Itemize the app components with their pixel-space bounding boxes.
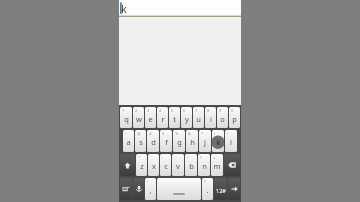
- staticText: (: [214, 131, 216, 136]
- button[interactable]: l: [225, 130, 237, 152]
- staticText: k: [121, 1, 127, 16]
- button[interactable]: t: [169, 107, 180, 128]
- button[interactable]: k: [119, 0, 241, 17]
- staticText: m: [213, 161, 221, 171]
- button[interactable]: b: [185, 154, 197, 176]
- button[interactable]: m: [211, 154, 223, 176]
- staticText: o: [220, 114, 225, 124]
- button[interactable]: Enter: [228, 178, 240, 200]
- button[interactable]: d: [147, 130, 159, 152]
- staticText: 3: [147, 108, 150, 113]
- staticText: 2: [135, 108, 138, 113]
- staticText: @: [137, 131, 141, 136]
- button[interactable]: ,: [145, 178, 156, 200]
- staticText: ": [138, 155, 140, 160]
- button[interactable]: u: [193, 107, 204, 128]
- staticText: p: [232, 114, 237, 124]
- staticText: ;: [174, 155, 176, 160]
- button[interactable]: g: [173, 130, 185, 152]
- staticText: !: [125, 131, 127, 136]
- button[interactable]: Backspace: [224, 154, 240, 176]
- staticText: /: [187, 155, 189, 160]
- staticText: l: [230, 137, 232, 147]
- staticText: ): [227, 131, 229, 136]
- button[interactable]: s: [135, 130, 146, 152]
- button[interactable]: .: [202, 178, 213, 200]
- staticText: b: [189, 161, 194, 171]
- staticText: $: [162, 131, 165, 136]
- staticText: s: [139, 137, 143, 147]
- staticText: v: [176, 161, 180, 171]
- button[interactable]: i: [205, 107, 216, 128]
- staticText: e: [148, 114, 153, 124]
- staticText: *: [201, 131, 204, 136]
- staticText: d: [151, 137, 156, 147]
- staticText: ,: [149, 185, 152, 195]
- button[interactable]: 12#: [214, 178, 227, 200]
- staticText: c: [164, 161, 168, 171]
- button[interactable]: z: [136, 154, 147, 176]
- button[interactable]: w: [133, 107, 144, 128]
- button[interactable]: v: [172, 154, 184, 176]
- button[interactable]: Switch keyboard: [120, 178, 132, 200]
- staticText: !: [147, 179, 149, 184]
- button[interactable]: a: [123, 130, 134, 152]
- staticText: &: [188, 131, 191, 136]
- staticText: h: [190, 137, 195, 147]
- staticText: 4: [159, 108, 162, 113]
- button[interactable]: Voice input: [133, 178, 144, 200]
- staticText: 7: [195, 108, 198, 113]
- staticText: k: [216, 137, 221, 147]
- staticText: g: [177, 137, 182, 147]
- button[interactable]: j: [199, 130, 211, 152]
- button[interactable]: c: [160, 154, 171, 176]
- button[interactable]: Shift: [120, 154, 135, 176]
- button[interactable]: r: [157, 107, 168, 128]
- staticText: j: [204, 137, 206, 147]
- button[interactable]: y: [181, 107, 192, 128]
- staticText: w: [136, 114, 142, 124]
- staticText: ': [150, 155, 151, 160]
- staticText: .: [206, 185, 209, 195]
- staticText: 12#: [216, 187, 226, 194]
- staticText: a: [126, 137, 131, 147]
- button[interactable]: h: [186, 130, 198, 152]
- staticText: ?: [204, 179, 206, 184]
- staticText: 8: [207, 108, 210, 113]
- staticText: 5: [171, 108, 174, 113]
- button[interactable]: n: [198, 154, 210, 176]
- staticText: :: [162, 155, 164, 160]
- staticText: z: [140, 161, 144, 171]
- staticText: %: [175, 131, 179, 136]
- staticText: 0: [231, 108, 234, 113]
- staticText: i: [210, 114, 212, 124]
- staticText: 1: [122, 108, 125, 113]
- staticText: ?: [200, 155, 202, 160]
- staticText: t: [173, 114, 176, 124]
- button[interactable]: e: [145, 107, 156, 128]
- button[interactable]: q: [120, 107, 132, 128]
- staticText: 9: [219, 108, 222, 113]
- staticText: n: [202, 161, 207, 171]
- staticText: 6: [183, 108, 186, 113]
- staticText: u: [196, 114, 201, 124]
- button[interactable]: f: [160, 130, 172, 152]
- staticText: y: [185, 114, 189, 124]
- button[interactable]: Space: [157, 178, 201, 200]
- button[interactable]: k: [212, 130, 224, 152]
- staticText: x: [152, 161, 156, 171]
- button[interactable]: x: [148, 154, 159, 176]
- staticText: #: [149, 131, 152, 136]
- staticText: +: [213, 155, 216, 160]
- button[interactable]: p: [229, 107, 240, 128]
- staticText: f: [165, 137, 168, 147]
- button[interactable]: o: [217, 107, 228, 128]
- staticText: r: [161, 114, 165, 124]
- staticText: q: [124, 114, 129, 124]
